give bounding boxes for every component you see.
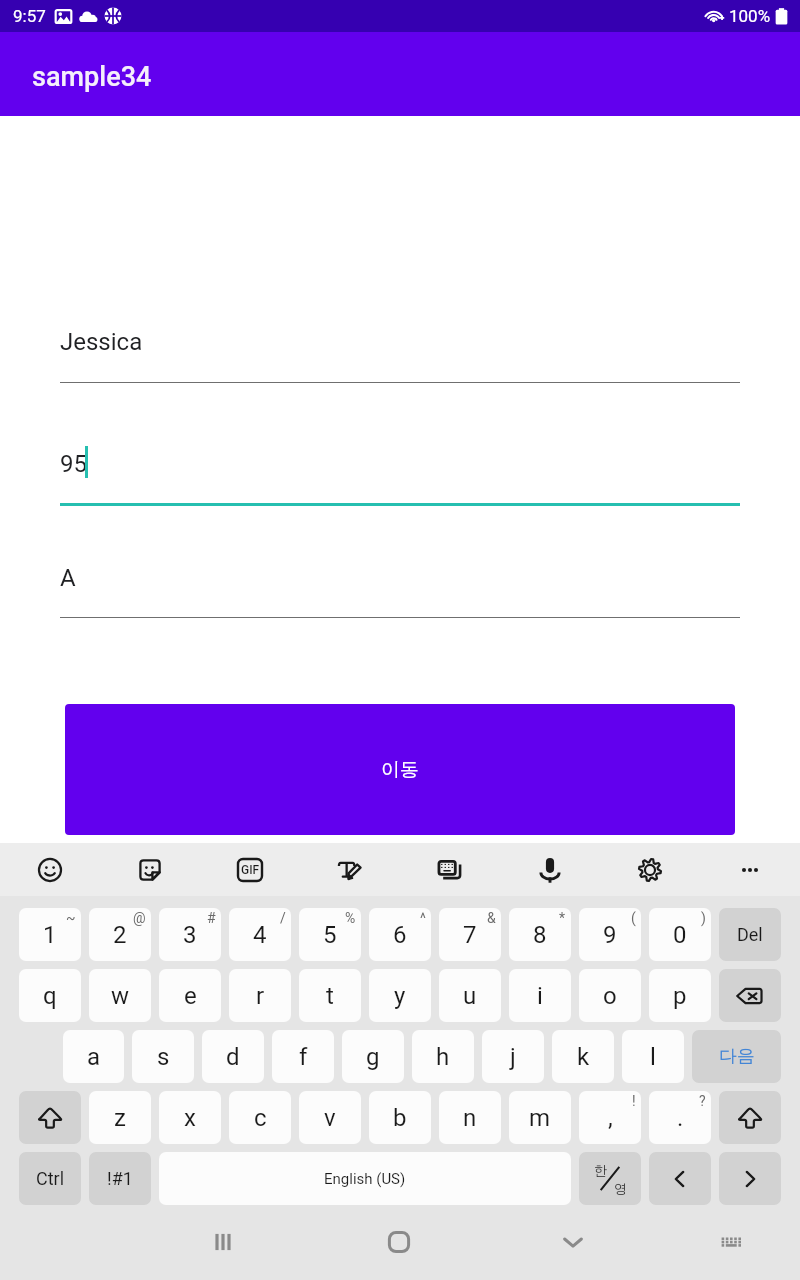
button[interactable]: Handwriting (300, 843, 400, 896)
button[interactable]: 8 (509, 908, 571, 961)
button[interactable]: left (649, 1152, 711, 1205)
staticText: j (510, 1043, 516, 1071)
button[interactable]: 2 (89, 908, 151, 961)
button[interactable]: 이동 (65, 704, 735, 835)
button[interactable]: z (89, 1091, 151, 1144)
button[interactable]: English (US) (159, 1152, 571, 1205)
staticText: ) (701, 910, 706, 926)
staticText: ? (699, 1093, 706, 1109)
button[interactable]: GIF (200, 843, 300, 896)
staticText: ^ (420, 910, 426, 926)
staticText: 영 (614, 1180, 627, 1196)
button[interactable]: backspace (719, 969, 781, 1022)
button[interactable]: d (202, 1030, 264, 1083)
button[interactable]: b (369, 1091, 431, 1144)
staticText: r (256, 982, 265, 1010)
button[interactable]: m (509, 1091, 571, 1144)
staticText: v (324, 1104, 336, 1132)
staticText: w (111, 982, 130, 1010)
button[interactable]: , (579, 1091, 641, 1144)
button[interactable]: c (229, 1091, 291, 1144)
button[interactable]: Home (369, 1212, 429, 1272)
button[interactable]: Settings (600, 843, 700, 896)
button[interactable]: right (719, 1152, 781, 1205)
button[interactable]: a (63, 1030, 124, 1083)
staticText: g (366, 1043, 380, 1071)
button[interactable]: i (509, 969, 571, 1022)
button[interactable]: Ctrl (19, 1152, 81, 1205)
button[interactable]: Del (719, 908, 781, 961)
button[interactable]: Stickers (100, 843, 200, 896)
staticText: ~ (66, 910, 76, 926)
button[interactable]: 4 (229, 908, 291, 961)
button[interactable]: w (89, 969, 151, 1022)
button[interactable]: . (649, 1091, 711, 1144)
button[interactable]: h (412, 1030, 474, 1083)
button[interactable]: 9 (579, 908, 641, 961)
button[interactable]: More options (700, 843, 800, 896)
staticText: Ctrl (36, 1168, 65, 1189)
button[interactable]: Recent apps (193, 1212, 253, 1272)
staticText: . (677, 1104, 684, 1132)
button[interactable]: 다음 (692, 1030, 781, 1083)
button[interactable]: l (622, 1030, 684, 1083)
staticText: b (393, 1104, 407, 1132)
staticText: m (529, 1104, 551, 1132)
staticText: p (673, 982, 687, 1010)
button[interactable]: y (369, 969, 431, 1022)
button[interactable]: r (229, 969, 291, 1022)
button[interactable]: 0 (649, 908, 711, 961)
button[interactable]: !#1 (89, 1152, 151, 1205)
button[interactable]: 7 (439, 908, 501, 961)
staticText: !#1 (107, 1168, 133, 1189)
button[interactable]: g (342, 1030, 404, 1083)
staticText: l (650, 1043, 656, 1071)
button[interactable]: Hide keyboard (543, 1212, 603, 1272)
button[interactable]: x (159, 1091, 221, 1144)
button[interactable]: v (299, 1091, 361, 1144)
button[interactable]: shift (19, 1091, 81, 1144)
staticText: / (280, 910, 286, 926)
button[interactable]: lang (579, 1152, 641, 1205)
button[interactable]: u (439, 969, 501, 1022)
button[interactable]: o (579, 969, 641, 1022)
staticText: f (299, 1043, 308, 1071)
staticText: o (603, 982, 617, 1010)
staticText: q (43, 982, 57, 1010)
button[interactable]: 1 (19, 908, 81, 961)
button[interactable]: 5 (299, 908, 361, 961)
staticText: % (345, 910, 356, 926)
staticText: 2 (113, 921, 127, 949)
button[interactable]: p (649, 969, 711, 1022)
staticText: 1 (43, 921, 57, 949)
staticText: t (326, 982, 334, 1010)
button[interactable]: 6 (369, 908, 431, 961)
button[interactable]: t (299, 969, 361, 1022)
staticText: i (537, 982, 543, 1010)
staticText: Jessica (60, 328, 143, 356)
staticText: 4 (253, 921, 267, 949)
button[interactable]: 3 (159, 908, 221, 961)
button[interactable]: Keyboard modes (400, 843, 500, 896)
staticText: k (577, 1043, 590, 1071)
button[interactable]: e (159, 969, 221, 1022)
button[interactable]: Voice input (500, 843, 600, 896)
staticText: A (60, 564, 76, 592)
staticText: s (157, 1043, 170, 1071)
button[interactable]: s (132, 1030, 194, 1083)
staticText: 9:57 (13, 6, 46, 26)
button[interactable]: j (482, 1030, 544, 1083)
staticText: 8 (533, 921, 547, 949)
button[interactable]: f (272, 1030, 334, 1083)
button[interactable]: k (552, 1030, 614, 1083)
staticText: 이동 (381, 758, 419, 782)
staticText: 3 (183, 921, 197, 949)
staticText: 100% (729, 6, 771, 26)
button[interactable]: n (439, 1091, 501, 1144)
button[interactable]: shift (719, 1091, 781, 1144)
button[interactable]: Switch keyboard (700, 1212, 760, 1272)
button[interactable]: q (19, 969, 81, 1022)
staticText: & (487, 910, 496, 926)
button[interactable]: Emoji (0, 843, 100, 896)
staticText: 95 (60, 450, 87, 478)
